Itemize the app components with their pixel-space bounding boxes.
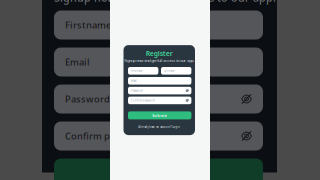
staticText: Password — [65, 93, 110, 105]
staticText: Firstname — [65, 19, 111, 31]
staticText: Surname — [164, 69, 175, 72]
staticText: Signup now and get full access to our ap… — [54, 0, 276, 5]
staticText: Confirm password — [131, 99, 155, 102]
staticText: Confirm password — [65, 130, 149, 142]
staticText: Email — [131, 79, 137, 82]
staticText: Register — [146, 49, 173, 58]
staticText: Password — [131, 89, 143, 92]
button[interactable]: Already have an account? Login — [123, 125, 195, 129]
button[interactable]: Submit — [128, 111, 191, 119]
staticText: Signup now and get full access to our ap… — [124, 58, 194, 63]
staticText: Email — [65, 56, 90, 68]
staticText: Submit — [152, 113, 167, 118]
staticText: Already have an account? Login — [138, 125, 180, 129]
staticText: Firstname — [131, 69, 143, 72]
